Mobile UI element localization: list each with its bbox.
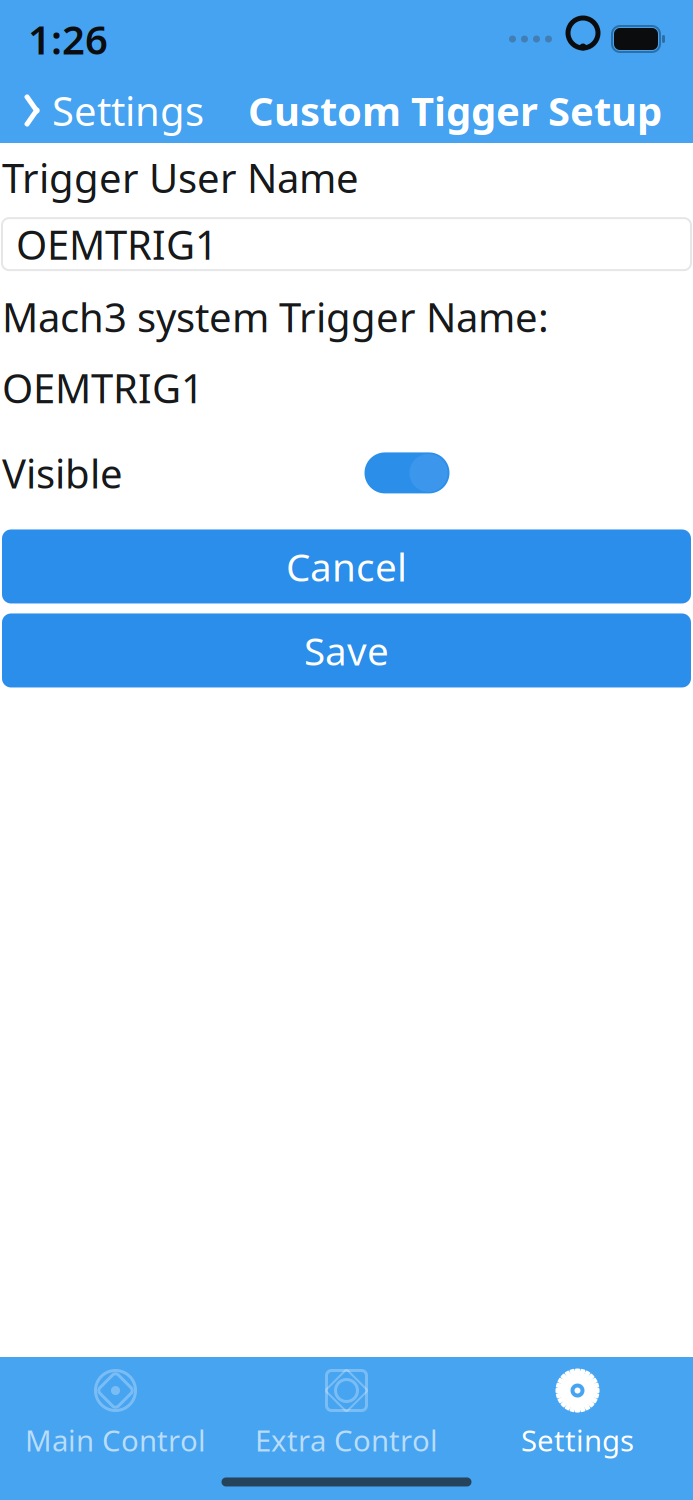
staticText: Settings: [521, 1420, 634, 1459]
staticText: Visible: [2, 446, 123, 499]
button[interactable]: Save: [2, 613, 691, 687]
staticText: OEMTRIG1: [2, 361, 204, 414]
staticText: 1:26: [28, 12, 108, 65]
button[interactable]: Settings: [462, 1354, 693, 1469]
staticText: Save: [304, 625, 389, 676]
staticText: Extra Control: [255, 1420, 438, 1459]
staticText: Trigger User Name: [2, 151, 359, 204]
staticText: Custom Tigger Setup: [248, 84, 662, 137]
button[interactable]: Cancel: [2, 529, 691, 603]
button[interactable]: Main Control: [0, 1354, 231, 1469]
button[interactable]: Extra Control: [231, 1354, 462, 1469]
button[interactable]: Back to Settings: [0, 72, 204, 149]
staticText: Cancel: [286, 541, 407, 592]
staticText: OEMTRIG1: [16, 218, 218, 271]
staticText: Main Control: [25, 1420, 206, 1459]
staticText: Mach3 system Trigger Name:: [2, 290, 549, 343]
button[interactable]: Visible toggle, on: [364, 452, 449, 493]
staticText: Settings: [52, 84, 204, 137]
